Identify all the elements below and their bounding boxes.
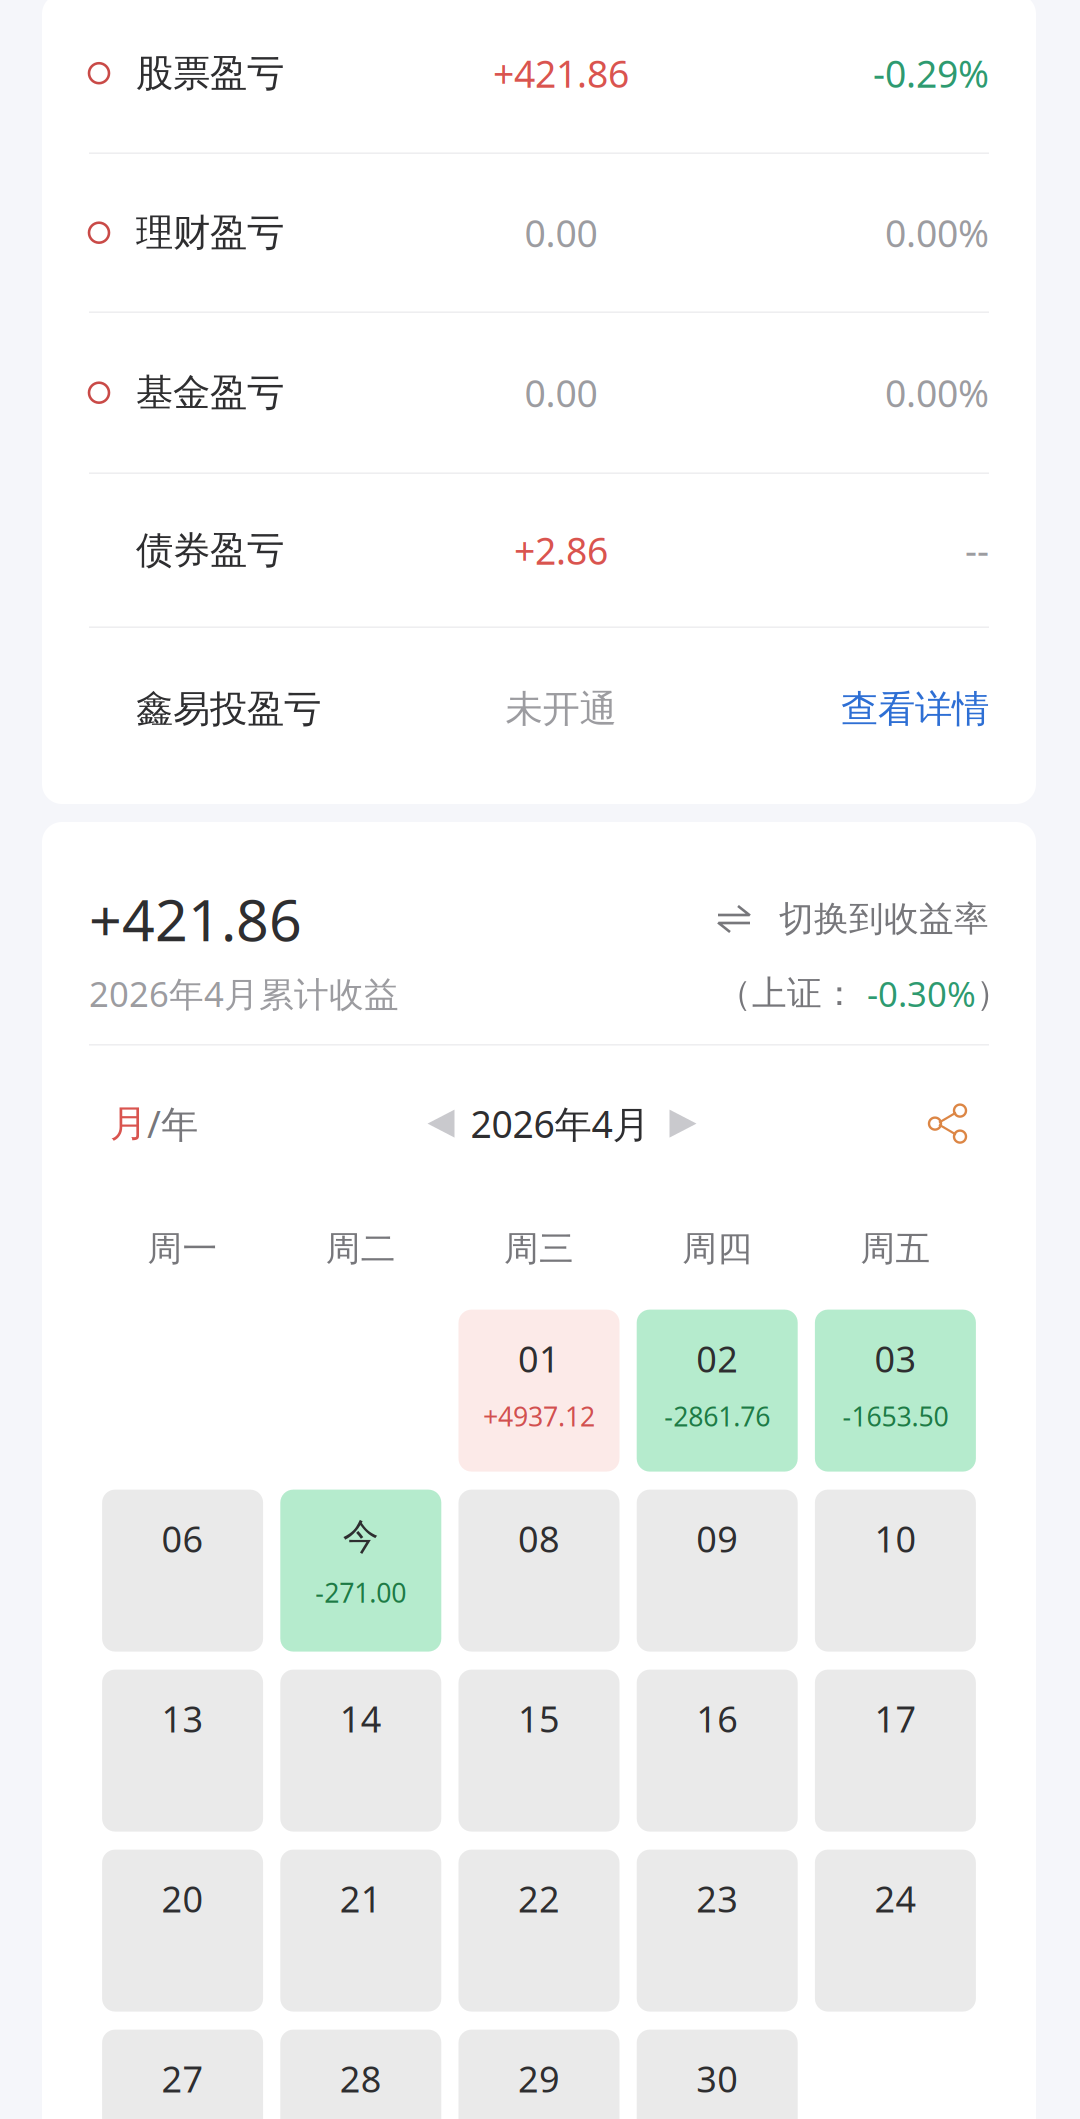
button[interactable]: 09 xyxy=(637,1490,798,1652)
staticText: 0.00 xyxy=(524,368,597,417)
staticText: 理财盈亏 xyxy=(136,210,284,256)
staticText: 10 xyxy=(874,1515,916,1562)
button[interactable]: 03 xyxy=(815,1310,976,1472)
staticText: -271.00 xyxy=(315,1575,406,1610)
staticText: 未开通 xyxy=(505,686,616,732)
staticText: 周五 xyxy=(860,1227,930,1270)
button[interactable]: 23 xyxy=(637,1850,798,2012)
staticText: 股票盈亏 xyxy=(136,50,284,96)
staticText: 鑫易投盈亏 xyxy=(136,686,321,732)
staticText: -0.29% xyxy=(873,48,989,98)
button[interactable]: 10 xyxy=(815,1490,976,1652)
staticText: +2.86 xyxy=(514,525,608,575)
button[interactable]: 30 xyxy=(637,2030,798,2119)
button[interactable]: 20 xyxy=(102,1850,263,2012)
staticText: 债券盈亏 xyxy=(136,527,284,573)
button[interactable]: 16 xyxy=(637,1670,798,1832)
staticText: 16 xyxy=(696,1695,738,1742)
button[interactable]: 月 xyxy=(110,1099,198,1148)
staticText: 24 xyxy=(874,1875,916,1922)
staticText: +421.86 xyxy=(89,881,302,957)
staticText: 29 xyxy=(518,2055,560,2102)
staticText: -1653.50 xyxy=(842,1398,948,1434)
staticText: ） xyxy=(976,972,1011,1015)
staticText: 0.00 xyxy=(524,208,597,257)
staticText: 月 xyxy=(110,1101,147,1147)
staticText: 0.00% xyxy=(885,208,989,257)
button[interactable]: 今 xyxy=(280,1490,441,1652)
staticText: 周一 xyxy=(148,1227,218,1270)
button[interactable]: 01 xyxy=(458,1310,619,1472)
staticText: 30 xyxy=(696,2055,738,2102)
button[interactable]: 24 xyxy=(815,1850,976,2012)
staticText: +4937.12 xyxy=(483,1398,595,1434)
staticText: +421.86 xyxy=(493,48,629,98)
staticText: 08 xyxy=(518,1515,560,1562)
button[interactable]: 15 xyxy=(458,1670,619,1832)
button[interactable]: 21 xyxy=(280,1850,441,2012)
staticText: 22 xyxy=(518,1875,560,1922)
staticText: -0.30% xyxy=(867,970,976,1016)
button[interactable]: 基金盈亏 xyxy=(89,313,989,472)
staticText: 15 xyxy=(518,1695,560,1742)
button[interactable]: 22 xyxy=(458,1850,619,2012)
staticText: 21 xyxy=(340,1875,382,1922)
staticText: 基金盈亏 xyxy=(136,370,284,416)
staticText: 切换到收益率 xyxy=(779,898,989,940)
staticText: -2861.76 xyxy=(664,1398,770,1434)
button[interactable]: 28 xyxy=(280,2030,441,2119)
staticText: 2026年4月累计收益 xyxy=(89,970,399,1016)
button[interactable]: 股票盈亏 xyxy=(89,0,989,152)
staticText: 27 xyxy=(162,2055,204,2102)
button[interactable]: 债券盈亏 xyxy=(89,474,989,626)
button[interactable]: 理财盈亏 xyxy=(89,154,989,311)
button[interactable]: Next month xyxy=(669,1109,696,1139)
staticText: 09 xyxy=(696,1515,738,1562)
staticText: 20 xyxy=(162,1875,204,1922)
button[interactable]: Previous month xyxy=(427,1109,454,1139)
button[interactable]: 08 xyxy=(458,1490,619,1652)
button[interactable]: Share xyxy=(926,1104,968,1144)
staticText: 02 xyxy=(696,1335,738,1382)
staticText: 2026年4月 xyxy=(470,1099,649,1148)
button[interactable]: 06 xyxy=(102,1490,263,1652)
staticText: 17 xyxy=(874,1695,916,1742)
staticText: 01 xyxy=(518,1335,560,1382)
staticText: -- xyxy=(965,525,989,575)
staticText: 周四 xyxy=(682,1227,752,1270)
staticText: 06 xyxy=(162,1515,204,1562)
staticText: /年 xyxy=(147,1099,198,1148)
button[interactable]: 鑫易投盈亏 xyxy=(89,628,989,804)
button[interactable]: 27 xyxy=(102,2030,263,2119)
staticText: 今 xyxy=(343,1515,379,1559)
button[interactable]: 29 xyxy=(458,2030,619,2119)
button[interactable]: 02 xyxy=(637,1310,798,1472)
button[interactable]: 切换到收益率 xyxy=(717,898,989,940)
staticText: 周三 xyxy=(504,1227,574,1270)
staticText: 03 xyxy=(874,1335,916,1382)
staticText: 查看详情 xyxy=(841,686,989,732)
staticText: 23 xyxy=(696,1875,738,1922)
staticText: 13 xyxy=(162,1695,204,1742)
staticText: 0.00% xyxy=(885,368,989,417)
button[interactable]: 17 xyxy=(815,1670,976,1832)
staticText: 周二 xyxy=(326,1227,396,1270)
button[interactable]: 14 xyxy=(280,1670,441,1832)
staticText: 28 xyxy=(340,2055,382,2102)
button[interactable]: 13 xyxy=(102,1670,263,1832)
staticText: 14 xyxy=(340,1695,382,1742)
staticText: （上证： xyxy=(717,972,857,1015)
